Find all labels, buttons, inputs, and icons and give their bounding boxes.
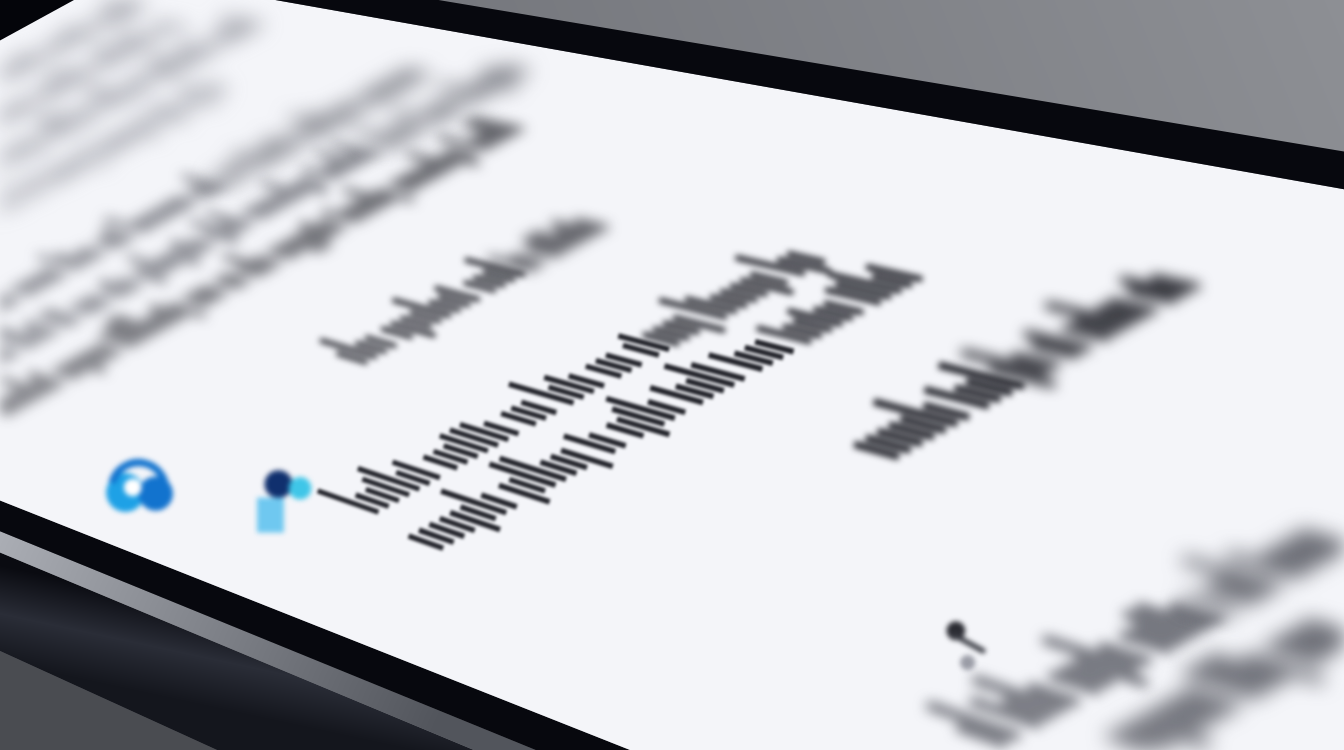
button[interactable]: Phone showing a document screen <box>0 0 1344 750</box>
